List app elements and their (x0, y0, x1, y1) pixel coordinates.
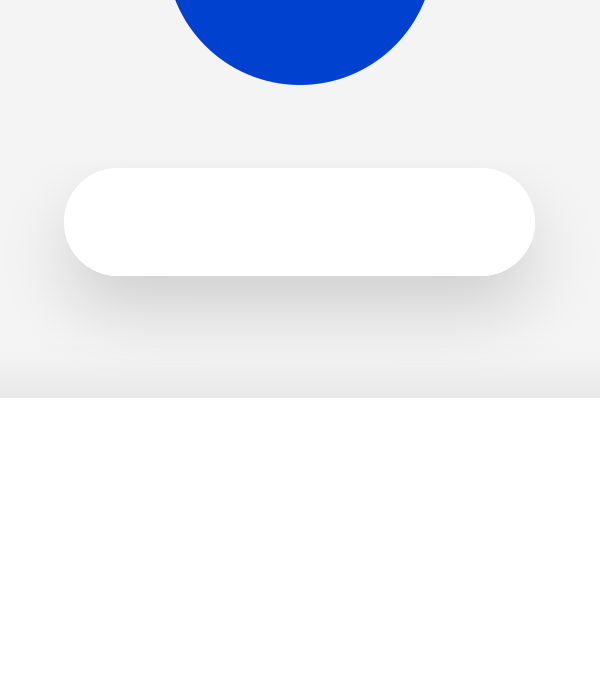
button[interactable]: Continue (64, 168, 535, 276)
